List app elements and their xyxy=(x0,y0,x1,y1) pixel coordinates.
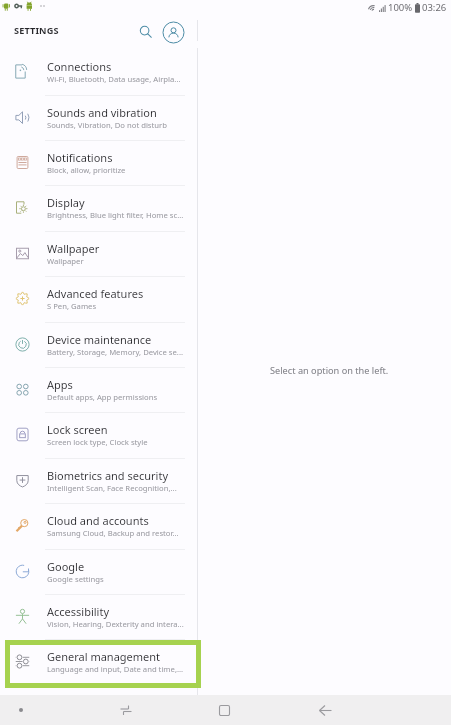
staticText: Device maintenance xyxy=(47,332,152,347)
staticText: Advanced features xyxy=(47,286,144,301)
staticText: Battery, Storage, Memory, Device se... xyxy=(47,347,184,357)
button[interactable]: Sounds and vibration xyxy=(0,95,197,140)
button[interactable]: Connections xyxy=(0,49,197,94)
staticText: Wallpaper xyxy=(47,256,84,266)
staticText: Connections xyxy=(47,59,112,74)
staticText: 03:26 xyxy=(422,1,447,14)
staticText: Brightness, Blue light filter, Home sc..… xyxy=(47,210,184,220)
staticText: Language and input, Date and time,... xyxy=(47,664,184,674)
staticText: Google settings xyxy=(47,574,104,584)
staticText: 100% xyxy=(388,1,413,14)
staticText: Wi-Fi, Bluetooth, Data usage, Airpla... xyxy=(47,74,181,84)
button[interactable]: Advanced features xyxy=(0,276,197,321)
button[interactable]: Google xyxy=(0,549,197,594)
staticText: S Pen, Games xyxy=(47,301,97,311)
staticText: Sounds and vibration xyxy=(47,105,157,120)
staticText: Lock screen xyxy=(47,422,108,437)
button[interactable]: Menu xyxy=(9,695,33,725)
staticText: Screen lock type, Clock style xyxy=(47,437,148,447)
staticText: Wallpaper xyxy=(47,241,100,256)
staticText: Display xyxy=(47,195,85,210)
button[interactable]: Account xyxy=(161,20,185,44)
button[interactable]: Back xyxy=(313,695,337,725)
staticText: General management xyxy=(47,649,161,664)
button[interactable]: Accessibility xyxy=(0,594,197,639)
staticText: Notifications xyxy=(47,150,113,165)
button[interactable]: Notifications xyxy=(0,140,197,185)
staticText: SETTINGS xyxy=(14,24,59,37)
staticText: Vision, Hearing, Dexterity and intera... xyxy=(47,619,184,629)
staticText: Apps xyxy=(47,377,73,392)
button[interactable]: Device maintenance xyxy=(0,322,197,367)
staticText: Cloud and accounts xyxy=(47,513,149,528)
staticText: Select an option on the left. xyxy=(270,364,389,377)
button[interactable]: General management xyxy=(0,639,197,684)
button[interactable]: Recents xyxy=(114,695,138,725)
staticText: Intelligent Scan, Face Recognition,... xyxy=(47,483,177,493)
staticText: Default apps, App permissions xyxy=(47,392,158,402)
staticText: Biometrics and security xyxy=(47,468,168,483)
staticText: Block, allow, prioritize xyxy=(47,165,126,175)
button[interactable]: Apps xyxy=(0,367,197,412)
button[interactable]: Wallpaper xyxy=(0,231,197,276)
button[interactable]: Lock screen xyxy=(0,412,197,457)
button[interactable]: Home xyxy=(212,695,236,725)
button[interactable]: Biometrics and security xyxy=(0,458,197,503)
button[interactable]: Cloud and accounts xyxy=(0,503,197,548)
staticText: Sounds, Vibration, Do not disturb xyxy=(47,120,167,130)
button[interactable]: Display xyxy=(0,185,197,230)
button[interactable]: Search xyxy=(136,22,156,42)
staticText: Accessibility xyxy=(47,604,110,619)
staticText: Samsung Cloud, Backup and restor... xyxy=(47,528,179,538)
staticText: Google xyxy=(47,559,85,574)
